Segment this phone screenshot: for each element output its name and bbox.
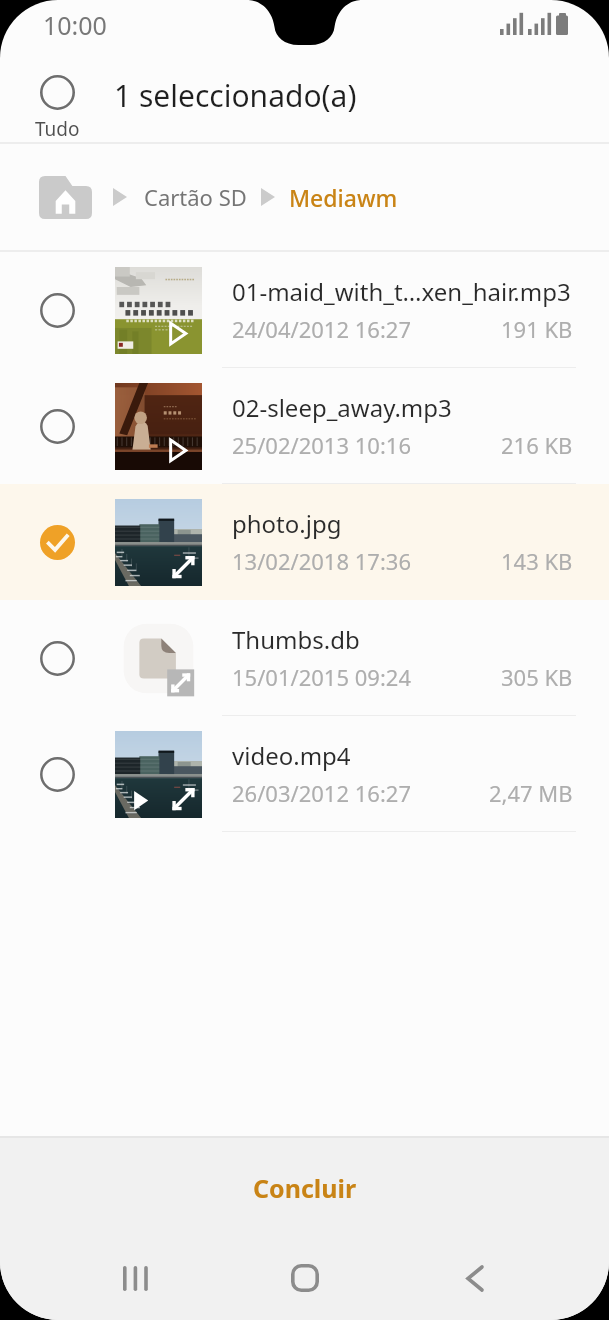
staticText: photo.jpg — [232, 507, 342, 540]
staticText: 10:00 — [43, 8, 107, 42]
button[interactable]: Mediawm — [289, 182, 398, 213]
staticText: 305 KB — [501, 662, 573, 692]
button[interactable]: Recent apps — [94, 1237, 176, 1319]
button[interactable]: 02-sleep_away.mp3 — [0, 368, 609, 484]
button[interactable]: 01-maid_with_t…xen_hair.mp3 — [0, 252, 609, 368]
button[interactable]: Back — [434, 1237, 516, 1319]
staticText: 24/04/2012 16:27 — [232, 314, 411, 344]
staticText: 191 KB — [501, 314, 573, 344]
staticText: 2,47 MB — [489, 778, 573, 808]
staticText: 01-maid_with_t…xen_hair.mp3 — [232, 275, 571, 308]
staticText: 1 seleccionado(a) — [114, 75, 357, 116]
staticText: 02-sleep_away.mp3 — [232, 391, 452, 424]
button[interactable]: video.mp4 — [0, 716, 609, 832]
button[interactable]: Cartão SD — [144, 182, 247, 212]
staticText: Thumbs.db — [232, 623, 360, 656]
staticText: 216 KB — [501, 430, 573, 460]
staticText: 26/03/2012 16:27 — [232, 778, 411, 808]
staticText: 15/01/2015 09:24 — [232, 662, 411, 692]
button[interactable]: photo.jpg — [0, 484, 609, 600]
button[interactable]: Thumbs.db — [0, 600, 609, 716]
staticText: video.mp4 — [232, 739, 351, 772]
button[interactable]: Select all — [0, 58, 115, 142]
button[interactable]: Root folder — [36, 168, 94, 226]
button[interactable]: Home — [264, 1237, 346, 1319]
button[interactable]: Concluir — [0, 1138, 609, 1237]
staticText: 143 KB — [501, 546, 573, 576]
staticText: Concluir — [253, 1171, 357, 1205]
staticText: 25/02/2013 10:16 — [232, 430, 411, 460]
staticText: 13/02/2018 17:36 — [232, 546, 411, 576]
staticText: Tudo — [35, 116, 80, 142]
